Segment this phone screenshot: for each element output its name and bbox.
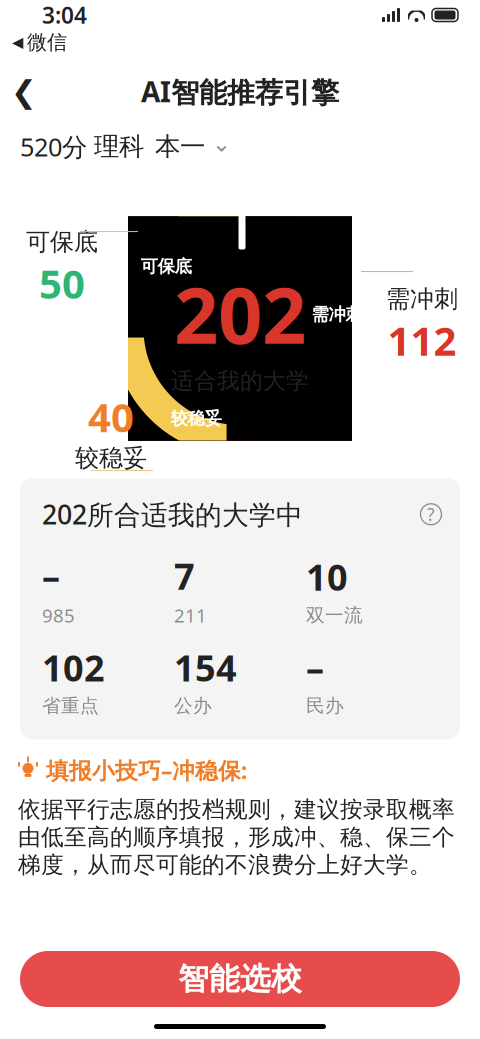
- button[interactable]: 说明: [414, 497, 448, 531]
- staticText: ◀: [12, 34, 23, 51]
- staticText: 202所合适我的大学中: [42, 497, 303, 532]
- button[interactable]: 520分: [0, 127, 251, 167]
- staticText: 依据平行志愿的投档规则，建议按录取概率由低至高的顺序填报，形成冲、稳、保三个梯度…: [18, 795, 455, 879]
- button[interactable]: 返回: [0, 69, 48, 115]
- staticText: 省重点: [42, 694, 99, 717]
- staticText: 10: [306, 553, 348, 601]
- staticText: 40: [88, 390, 134, 443]
- staticText: ❮: [11, 74, 37, 109]
- staticText: –: [306, 644, 324, 691]
- button[interactable]: 智能选校: [20, 951, 460, 1007]
- staticText: 理科: [94, 131, 144, 162]
- staticText: 985: [42, 603, 75, 628]
- staticText: –: [42, 552, 60, 600]
- staticText: 可保底: [26, 227, 98, 257]
- staticText: 智能选校: [178, 960, 302, 998]
- staticText: 需冲刺: [311, 304, 362, 325]
- staticText: 较稳妥: [170, 408, 221, 429]
- staticText: 民办: [306, 694, 344, 717]
- staticText: 211: [174, 603, 207, 628]
- staticText: 202: [174, 262, 306, 365]
- staticText: 公办: [174, 694, 212, 717]
- staticText: 50: [39, 257, 85, 310]
- staticText: 3:04: [42, 0, 87, 30]
- staticText: 7: [174, 552, 195, 600]
- staticText: 微信: [27, 30, 67, 55]
- staticText: 较稳妥: [75, 443, 147, 473]
- staticText: 112: [387, 314, 456, 367]
- staticText: 本一: [155, 131, 205, 162]
- staticText: 可保底: [140, 256, 191, 277]
- staticText: 填报小技巧–冲稳保:: [46, 755, 247, 785]
- staticText: 520分: [20, 130, 87, 163]
- staticText: 154: [174, 644, 237, 691]
- staticText: 需冲刺: [386, 284, 458, 314]
- staticText: 102: [42, 644, 105, 691]
- staticText: 适合我的大学: [171, 367, 309, 395]
- staticText: ⌄: [212, 131, 231, 156]
- staticText: 双一流: [306, 604, 363, 627]
- staticText: ?: [427, 503, 435, 526]
- staticText: AI智能推荐引擎: [141, 73, 339, 110]
